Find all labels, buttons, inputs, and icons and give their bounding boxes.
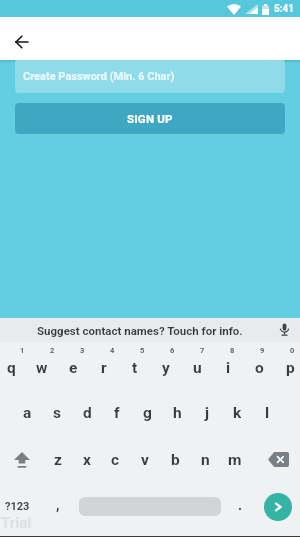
staticText: 1 xyxy=(20,346,25,355)
staticText: z xyxy=(54,451,62,469)
button[interactable]: v xyxy=(130,436,160,483)
button[interactable]: b xyxy=(160,436,190,483)
button[interactable] xyxy=(255,483,300,530)
button[interactable]: p xyxy=(270,342,300,389)
staticText: y xyxy=(162,359,170,377)
button[interactable]: c xyxy=(101,436,130,483)
button[interactable]: Create Password (Min. 6 Char) xyxy=(15,60,285,93)
staticText: a xyxy=(23,404,32,422)
button[interactable]: , xyxy=(40,483,75,530)
staticText: m xyxy=(228,451,242,469)
button[interactable]: q xyxy=(0,342,30,389)
button[interactable]: . xyxy=(225,483,255,530)
staticText: h xyxy=(173,404,182,422)
staticText: Suggest contact names? Touch for info. xyxy=(37,324,243,337)
button[interactable] xyxy=(8,28,36,56)
button[interactable]: o xyxy=(240,342,270,389)
button[interactable]: h xyxy=(165,389,195,436)
staticText: 2 xyxy=(50,346,55,355)
button[interactable]: f xyxy=(105,389,135,436)
button[interactable]: e xyxy=(60,342,90,389)
staticText: 6 xyxy=(170,346,175,355)
staticText: s xyxy=(53,404,61,422)
staticText: f xyxy=(114,404,120,422)
button[interactable]: y xyxy=(150,342,180,389)
staticText: . xyxy=(238,497,243,513)
button[interactable]: w xyxy=(30,342,60,389)
button[interactable]: t xyxy=(120,342,150,389)
staticText: v xyxy=(141,451,149,469)
staticText: 5 xyxy=(140,346,145,355)
staticText: u xyxy=(193,359,202,377)
button[interactable] xyxy=(250,436,300,483)
staticText: w xyxy=(36,359,48,377)
button[interactable]: z xyxy=(43,436,72,483)
staticText: j xyxy=(205,404,210,422)
staticText: l xyxy=(265,404,270,422)
button[interactable]: u xyxy=(180,342,210,389)
staticText: 8 xyxy=(230,346,235,355)
button[interactable]: i xyxy=(210,342,240,389)
staticText: Create Password (Min. 6 Char) xyxy=(23,70,175,83)
button[interactable] xyxy=(75,483,225,530)
staticText: d xyxy=(83,404,92,422)
button[interactable]: l xyxy=(255,389,285,436)
staticText: 3 xyxy=(80,346,85,355)
staticText: t xyxy=(132,359,138,377)
staticText: 4 xyxy=(110,346,115,355)
staticText: g xyxy=(143,404,152,422)
button[interactable]: s xyxy=(45,389,75,436)
button[interactable]: m xyxy=(220,436,250,483)
staticText: , xyxy=(56,497,60,513)
staticText: ?123 xyxy=(5,500,30,513)
button[interactable]: ?123 xyxy=(0,483,40,530)
staticText: b xyxy=(171,451,180,469)
button[interactable]: x xyxy=(72,436,101,483)
button[interactable]: j xyxy=(195,389,225,436)
button[interactable]: r xyxy=(90,342,120,389)
staticText: q xyxy=(7,359,16,377)
staticText: 0 xyxy=(290,346,295,355)
staticText: o xyxy=(255,359,264,377)
button[interactable]: k xyxy=(225,389,255,436)
button[interactable]: Suggest contact names? Touch for info. xyxy=(0,318,300,342)
button[interactable]: a xyxy=(15,389,45,436)
staticText: Trial xyxy=(1,514,32,532)
staticText: i xyxy=(226,359,231,377)
button[interactable]: SIGN UP xyxy=(15,103,285,134)
button[interactable] xyxy=(0,436,43,483)
staticText: 5:41 xyxy=(274,3,295,15)
staticText: r xyxy=(101,359,107,377)
staticText: p xyxy=(286,359,295,377)
button[interactable]: n xyxy=(190,436,220,483)
staticText: c xyxy=(111,451,120,469)
button[interactable]: d xyxy=(75,389,105,436)
button[interactable]: g xyxy=(135,389,165,436)
staticText: SIGN UP xyxy=(127,112,173,125)
staticText: 7 xyxy=(200,346,205,355)
staticText: 9 xyxy=(260,346,265,355)
staticText: k xyxy=(233,404,242,422)
staticText: e xyxy=(69,359,78,377)
staticText: n xyxy=(201,451,210,469)
staticText: x xyxy=(83,451,91,469)
